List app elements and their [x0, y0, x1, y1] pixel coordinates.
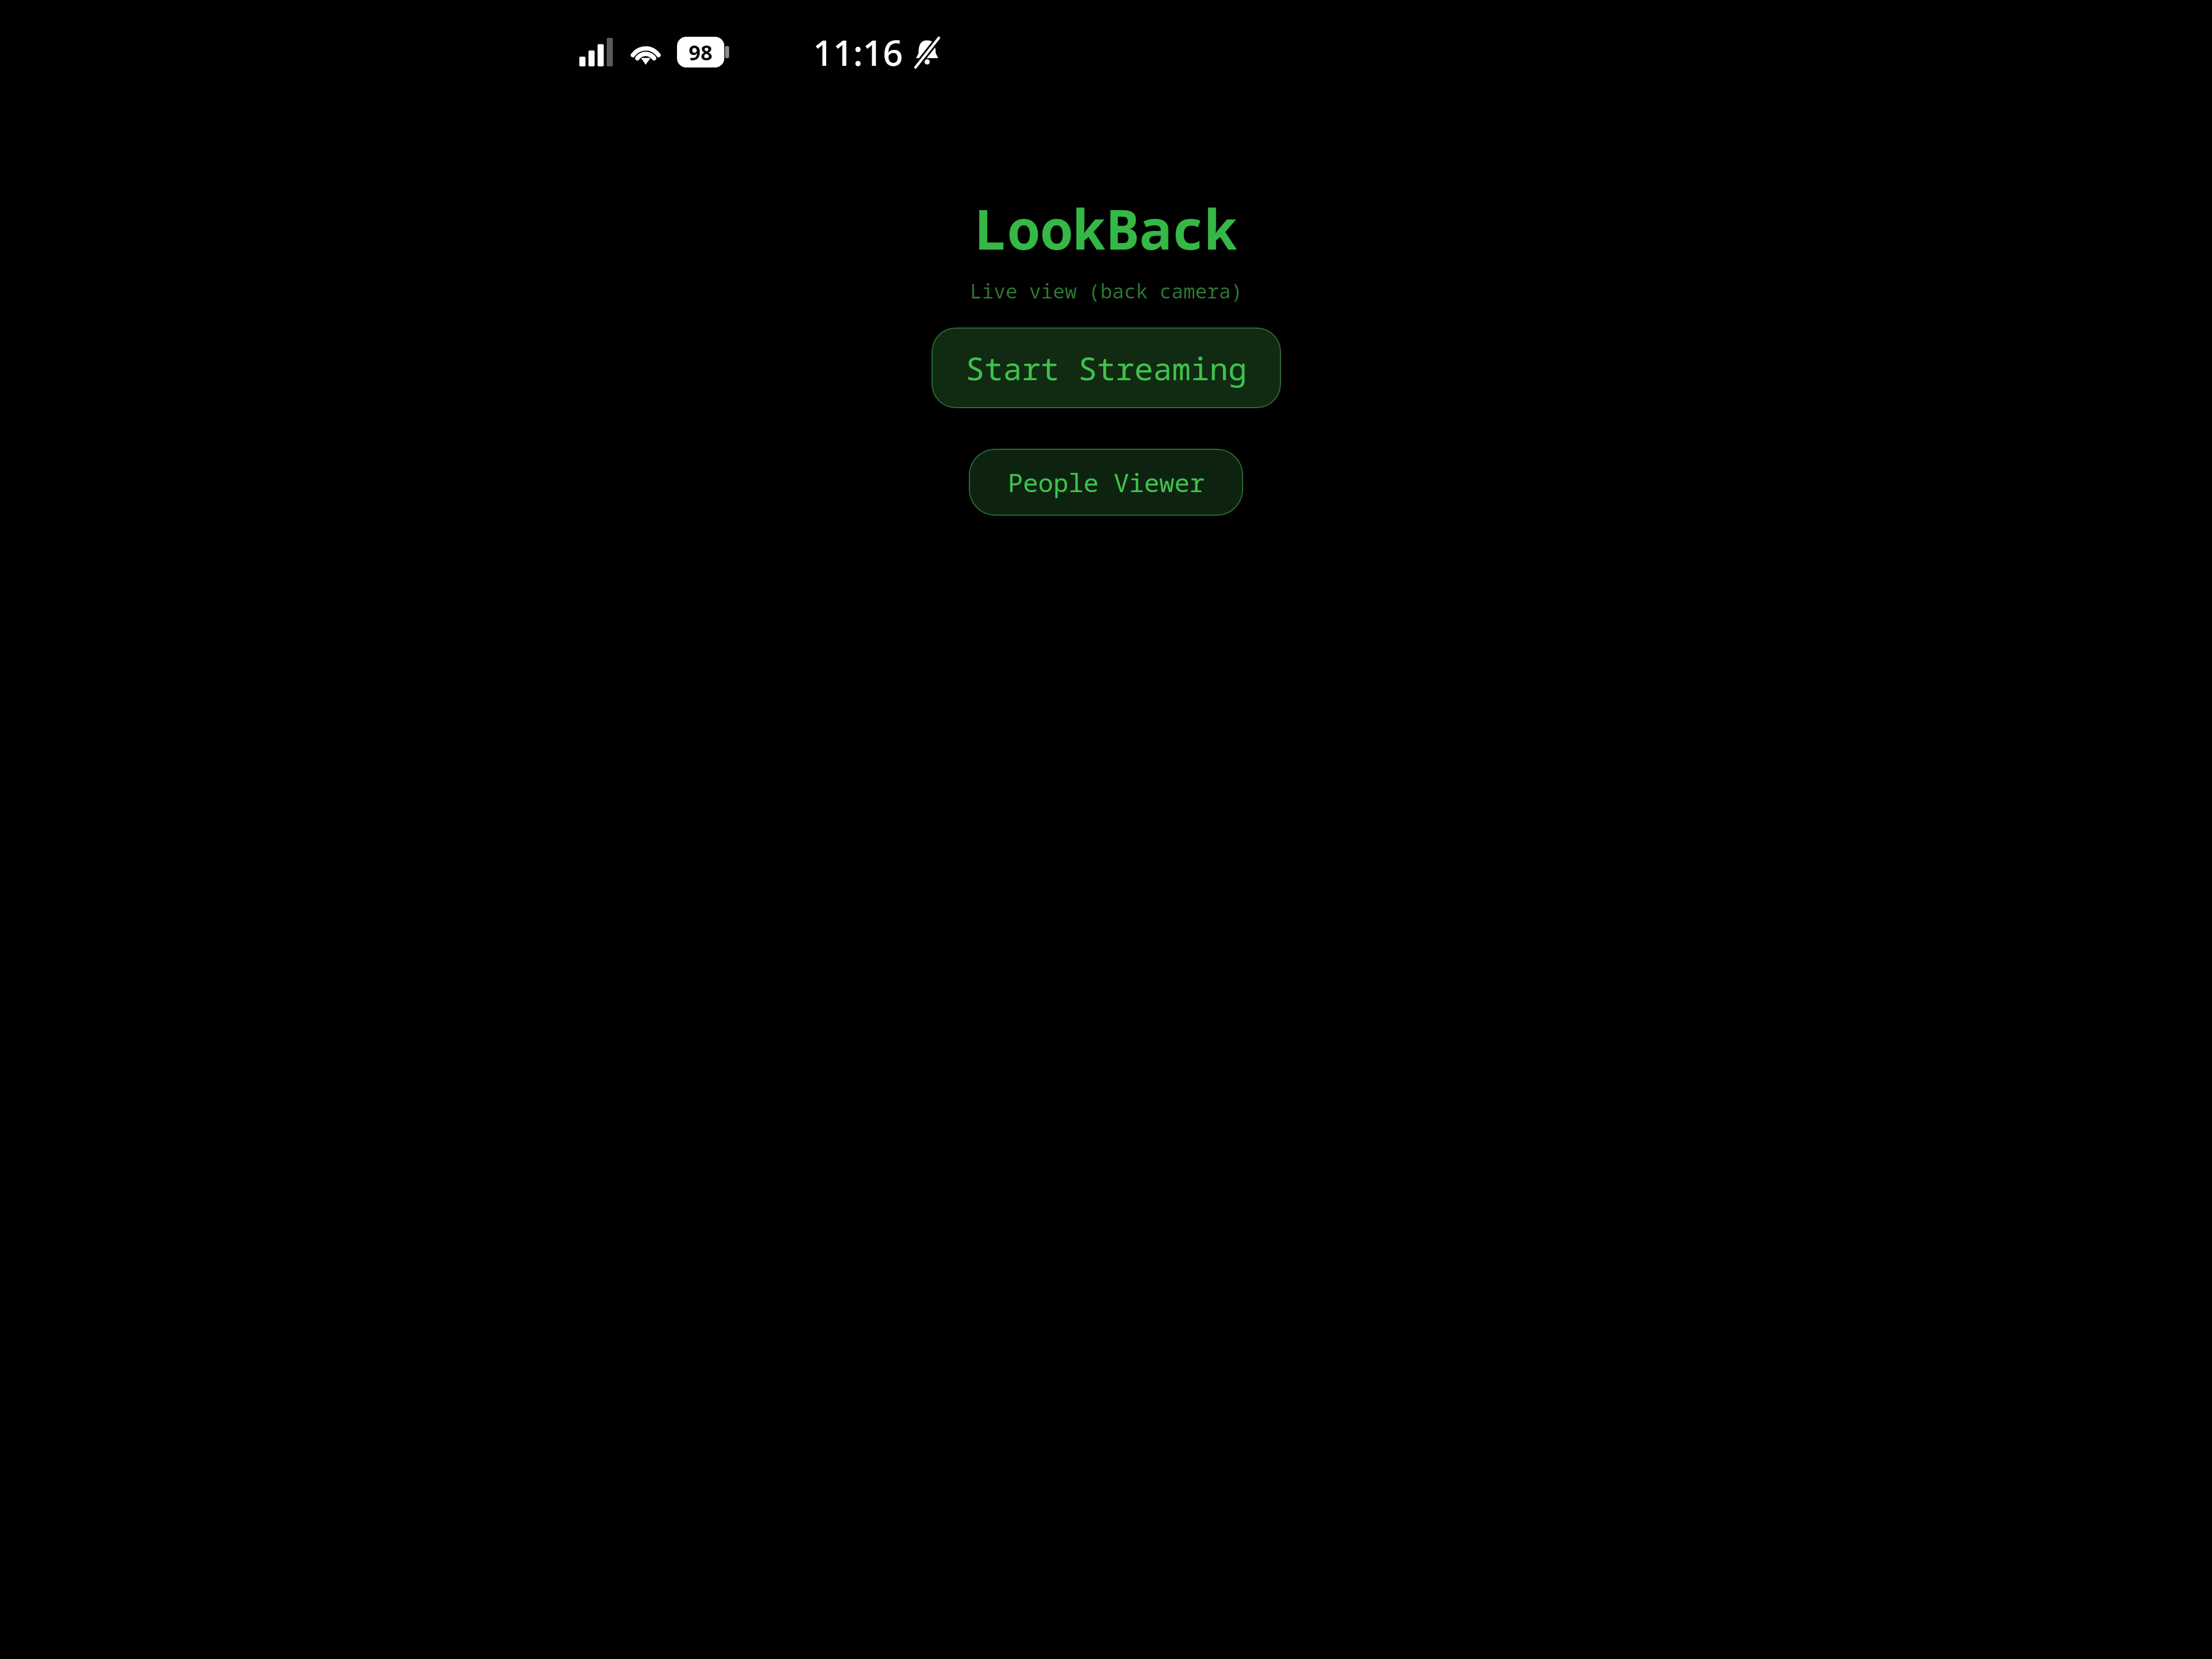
other: Mobile signal — [579, 38, 614, 66]
button[interactable]: Start Streaming — [932, 328, 1281, 408]
button[interactable]: People Viewer — [969, 449, 1243, 516]
staticText: 98 — [689, 38, 713, 66]
staticText: LookBack — [974, 191, 1238, 266]
staticText: Live view (back camera) — [970, 278, 1243, 304]
staticText: Start Streaming — [966, 347, 1247, 390]
staticText: People Viewer — [1008, 465, 1205, 500]
other: Wi-Fi — [629, 38, 663, 66]
staticText: 11:16 — [813, 29, 903, 76]
other: Battery 98 percent — [677, 37, 731, 67]
other: Notifications muted — [912, 37, 943, 68]
